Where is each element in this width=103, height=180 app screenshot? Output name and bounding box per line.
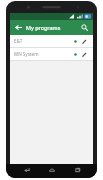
button[interactable]: Edit [80,50,89,59]
button[interactable]: Back [21,164,32,175]
staticText: E&T [14,38,71,44]
staticText: MN System [14,51,71,57]
button[interactable]: Status [71,50,79,58]
button[interactable]: Edit [80,37,89,46]
button[interactable]: Search [79,22,90,33]
button[interactable]: Recents [72,164,83,175]
button[interactable]: E&T [10,35,93,47]
button[interactable]: MN System [10,48,93,60]
staticText: My programs [26,24,79,31]
button[interactable]: Home [46,164,57,175]
button[interactable]: Status [71,37,79,45]
button[interactable]: Back [13,22,24,33]
